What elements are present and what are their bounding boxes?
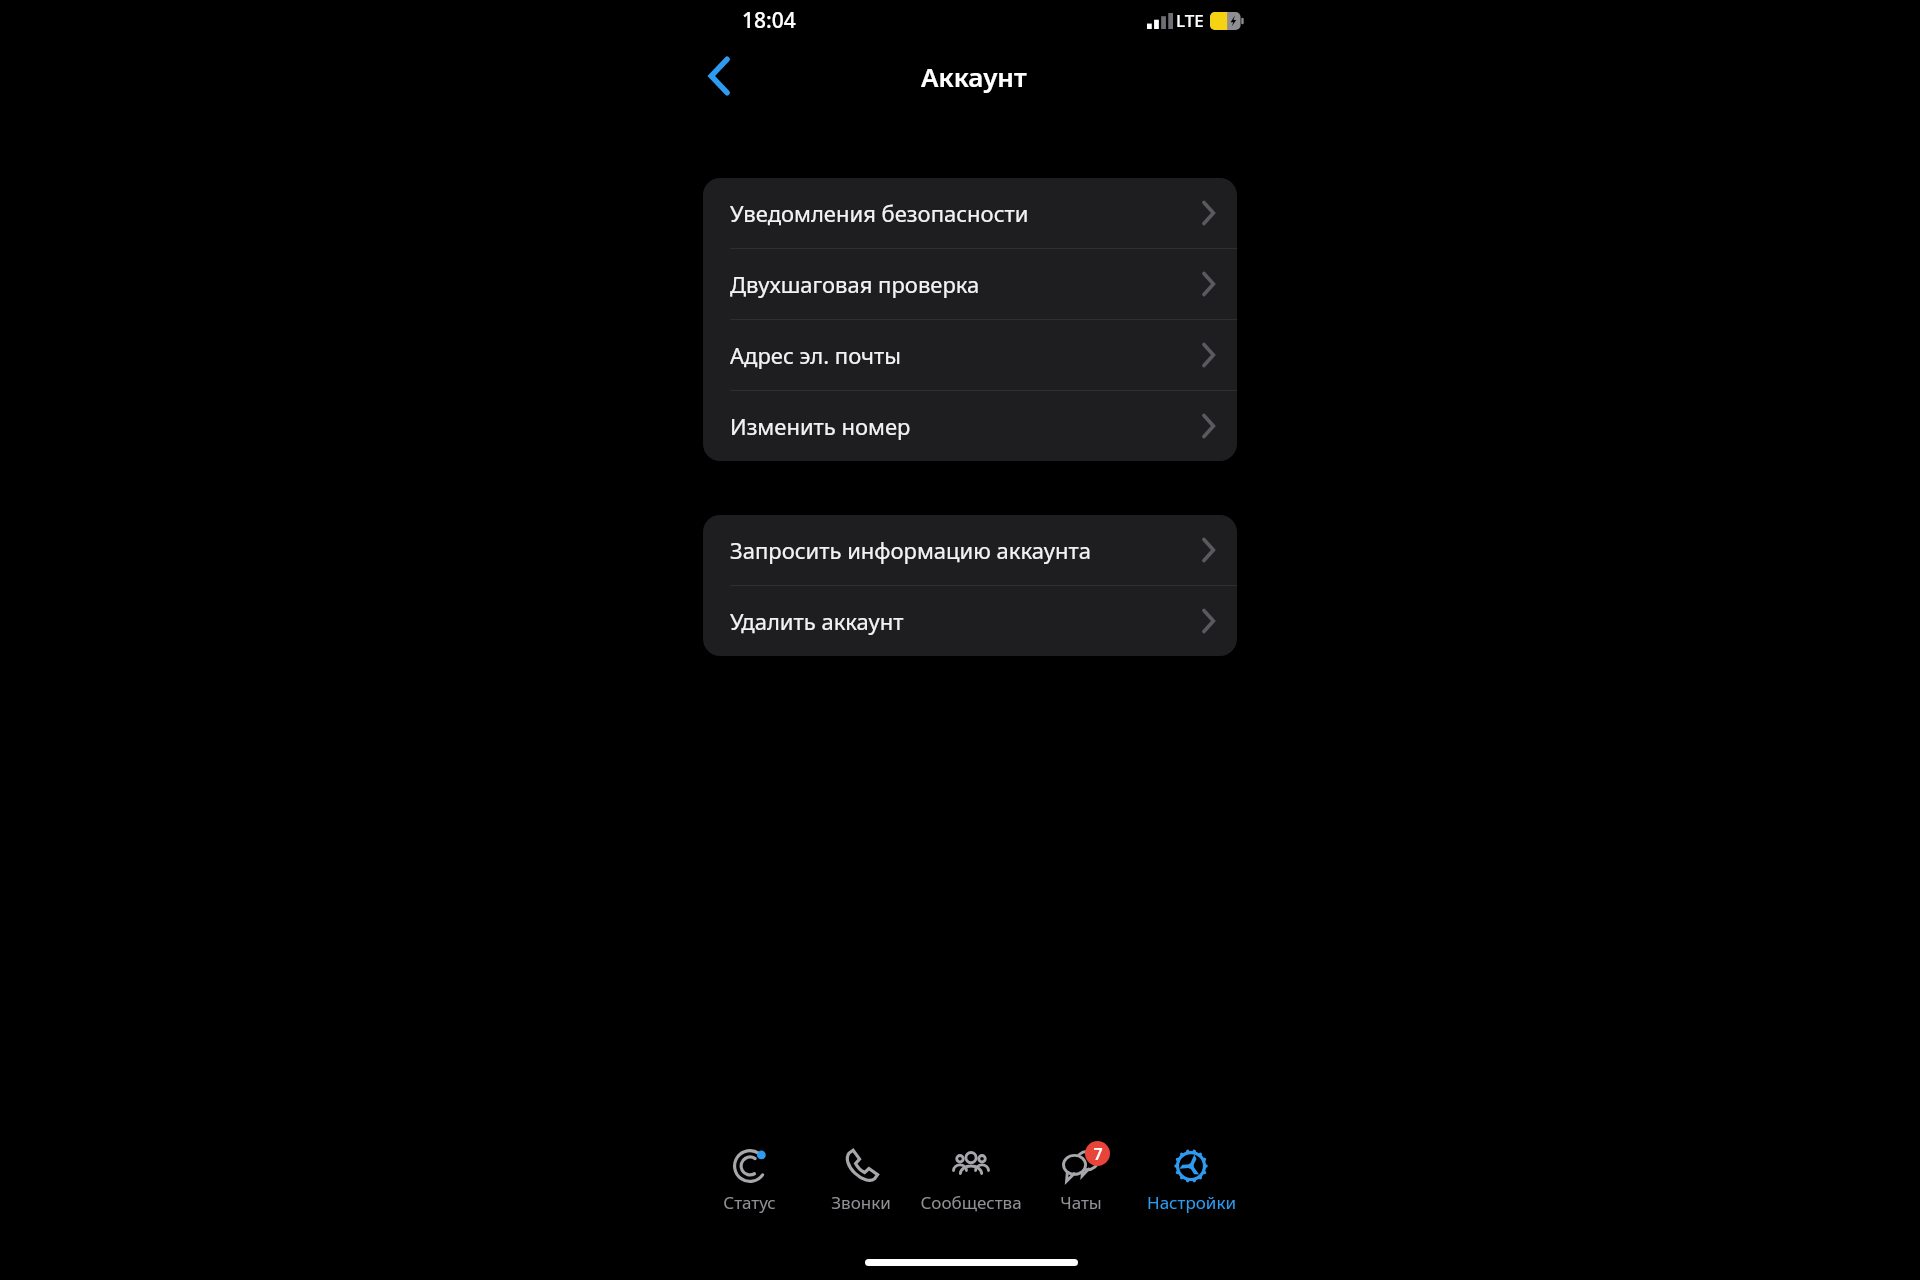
button[interactable]: Двухшаговая проверка [703,249,1237,319]
staticText: Звонки [831,1191,891,1214]
staticText: Удалить аккаунт [730,606,1202,636]
button[interactable]: Удалить аккаунт [703,586,1237,656]
staticText: Двухшаговая проверка [730,269,1202,299]
staticText: Адрес эл. почты [730,340,1202,370]
staticText: Изменить номер [730,411,1202,441]
staticText: Настройки [1147,1191,1236,1214]
button[interactable]: Назад [692,48,748,104]
staticText: Запросить информацию аккаунта [730,535,1202,565]
staticText: Аккаунт [921,59,1027,94]
button[interactable]: Изменить номер [703,391,1237,461]
staticText: 7 [1093,1143,1103,1165]
button[interactable]: Статус [694,1143,805,1227]
button[interactable]: Сообщества [916,1143,1026,1227]
staticText: 18:04 [742,6,796,35]
button[interactable]: Адрес эл. почты [703,320,1237,390]
staticText: Статус [723,1191,776,1214]
button[interactable]: Запросить информацию аккаунта [703,515,1237,585]
staticText: LTE [1176,9,1204,32]
staticText: Уведомления безопасности [730,198,1202,228]
button[interactable]: Звонки [805,1143,916,1227]
button[interactable]: 7 [1026,1143,1136,1227]
button[interactable]: Уведомления безопасности [703,178,1237,248]
staticText: Чаты [1060,1191,1102,1214]
button[interactable]: Настройки [1136,1143,1246,1227]
staticText: Сообщества [920,1191,1022,1214]
